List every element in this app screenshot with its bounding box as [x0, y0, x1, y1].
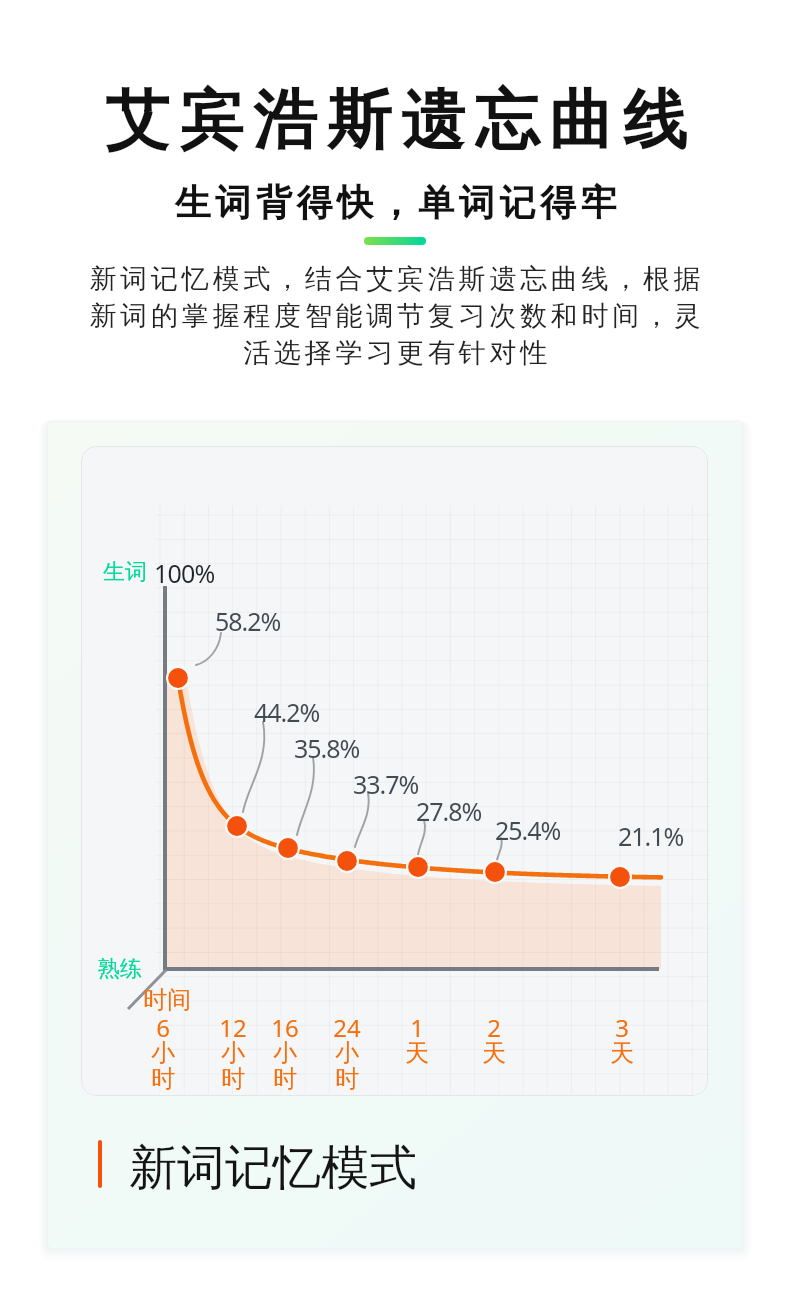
staticText: 44.2% [254, 695, 320, 729]
staticText: 艾宾浩斯遗忘曲线 [6, 80, 790, 161]
staticText: 16 小 时 [255, 1011, 315, 1095]
staticText: 27.8% [416, 794, 482, 828]
staticText: 6 小 时 [133, 1011, 193, 1095]
staticText: 熟练 [98, 955, 142, 983]
button[interactable]: 艾宾浩斯遗忘曲线图卡片 [48, 422, 742, 1248]
staticText: 生词 [103, 558, 147, 586]
staticText: 100% [154, 556, 215, 590]
staticText: 12 小 时 [203, 1011, 263, 1095]
staticText: 33.7% [353, 767, 419, 801]
staticText: 3 天 [592, 1011, 652, 1069]
button[interactable]: 新词记忆模式 [98, 1138, 428, 1190]
staticText: 35.8% [294, 731, 360, 765]
staticText: 2 天 [464, 1011, 524, 1069]
staticText: 时间 [143, 985, 191, 1015]
staticText: 新词记忆模式，结合艾宾浩斯遗忘曲线，根据 新词的掌握程度智能调节复习次数和时间，… [2, 262, 790, 370]
staticText: 生词背得快，单词记得牢 [3, 180, 790, 225]
staticText: 58.2% [215, 604, 281, 638]
staticText: 25.4% [495, 813, 561, 847]
staticText: 新词记忆模式 [129, 1138, 417, 1190]
staticText: 24 小 时 [317, 1011, 377, 1095]
staticText: 1 天 [387, 1011, 447, 1069]
button[interactable]: 遗忘曲线走势图 [81, 446, 708, 1096]
staticText: 21.1% [618, 819, 684, 853]
